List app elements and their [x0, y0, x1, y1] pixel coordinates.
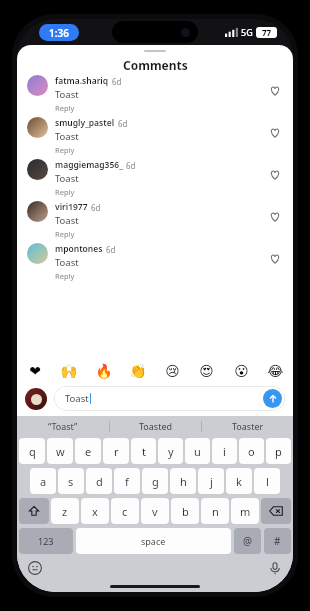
staticText: k	[236, 474, 242, 489]
button[interactable]: 👏	[128, 361, 148, 381]
button[interactable]: fatma.shariq	[17, 71, 293, 113]
staticText: b	[182, 504, 189, 519]
button[interactable]: a	[30, 468, 56, 494]
staticText: 6d	[118, 118, 128, 129]
staticText: e	[85, 444, 92, 459]
button[interactable]: b	[171, 498, 199, 524]
button[interactable]: l	[254, 468, 280, 494]
button[interactable]: e	[75, 438, 101, 464]
button[interactable]: c	[111, 498, 139, 524]
staticText: smugly_pastel	[55, 117, 115, 129]
button[interactable]: d	[86, 468, 112, 494]
staticText: Reply	[55, 187, 75, 197]
button[interactable]: i	[212, 438, 237, 464]
button[interactable]: p	[266, 438, 291, 464]
button[interactable]: smugly_pastel	[17, 113, 293, 155]
button[interactable]: 😂	[265, 361, 285, 381]
button[interactable]: 123	[19, 528, 73, 554]
staticText: 😂	[267, 363, 284, 379]
staticText: fatma.shariq	[55, 75, 109, 87]
button[interactable]: z	[51, 498, 79, 524]
staticText: 6d	[126, 160, 136, 171]
button[interactable]: Dictation	[267, 560, 283, 576]
button[interactable]: 🔥	[94, 361, 114, 381]
button[interactable]: #	[264, 528, 291, 554]
staticText: Toast	[55, 214, 79, 227]
button[interactable]: space	[76, 528, 231, 554]
staticText: p	[275, 444, 282, 459]
button[interactable]: 😍	[196, 361, 216, 381]
staticText: q	[29, 444, 36, 459]
staticText: 6d	[112, 76, 122, 87]
button[interactable]: Toast	[54, 386, 285, 411]
button[interactable]: w	[47, 438, 73, 464]
staticText: m	[240, 504, 251, 519]
button[interactable]: Reply	[55, 187, 75, 197]
button[interactable]: Like	[267, 125, 283, 141]
button[interactable]: 😮	[231, 361, 251, 381]
button[interactable]: Reply	[55, 103, 75, 113]
button[interactable]: j	[198, 468, 224, 494]
button[interactable]: k	[226, 468, 252, 494]
staticText: t	[142, 444, 146, 459]
staticText: Reply	[55, 145, 75, 155]
staticText: Toasted	[139, 420, 173, 432]
button[interactable]: Reply	[55, 271, 75, 281]
staticText: n	[212, 504, 219, 519]
staticText: h	[180, 474, 187, 489]
button[interactable]: Backspace	[261, 498, 291, 524]
staticText: z	[62, 504, 68, 519]
button[interactable]: o	[239, 438, 264, 464]
button[interactable]: f	[114, 468, 140, 494]
staticText: 👏	[129, 363, 147, 379]
button[interactable]: Toaster	[202, 416, 293, 436]
button[interactable]: u	[185, 438, 210, 464]
staticText: 5G	[241, 26, 253, 38]
button[interactable]: 😢	[162, 361, 182, 381]
staticText: 6d	[91, 202, 101, 213]
button[interactable]: 🙌	[59, 361, 79, 381]
button[interactable]: q	[19, 438, 45, 464]
button[interactable]: mpontones	[17, 239, 293, 281]
staticText: a	[40, 474, 47, 489]
button[interactable]: s	[58, 468, 84, 494]
button[interactable]: Like	[267, 167, 283, 183]
button[interactable]: y	[158, 438, 183, 464]
staticText: 🙌	[60, 363, 78, 379]
button[interactable]: “Toast”	[17, 416, 109, 436]
staticText: 😢	[165, 363, 180, 379]
staticText: Toaster	[232, 420, 264, 432]
button[interactable]: viri1977	[17, 197, 293, 239]
button[interactable]: m	[231, 498, 259, 524]
button[interactable]: ❤️	[25, 361, 45, 381]
staticText: 😍	[199, 363, 214, 379]
staticText: @	[243, 534, 252, 548]
button[interactable]: Like	[267, 209, 283, 225]
staticText: d	[96, 474, 103, 489]
button[interactable]: Toasted	[110, 416, 201, 436]
button[interactable]: Reply	[55, 145, 75, 155]
button[interactable]: n	[201, 498, 229, 524]
button[interactable]: maggiemag356_	[17, 155, 293, 197]
staticText: Toast	[55, 256, 79, 269]
button[interactable]: Emoji keyboard	[27, 560, 43, 576]
staticText: s	[68, 474, 74, 489]
button[interactable]: Reply	[55, 229, 75, 239]
button[interactable]: Your profile	[25, 388, 47, 410]
staticText: f	[125, 474, 129, 489]
staticText: Reply	[55, 271, 75, 281]
staticText: o	[248, 444, 255, 459]
button[interactable]: @	[234, 528, 261, 554]
button[interactable]: Like	[267, 251, 283, 267]
button[interactable]: g	[142, 468, 168, 494]
button[interactable]: x	[81, 498, 109, 524]
button[interactable]: Shift	[19, 498, 49, 524]
staticText: #	[274, 534, 281, 548]
button[interactable]: h	[170, 468, 196, 494]
button[interactable]: r	[103, 438, 129, 464]
button[interactable]: Like	[267, 83, 283, 99]
button[interactable]: v	[141, 498, 169, 524]
staticText: mpontones	[55, 243, 103, 255]
button[interactable]: Send	[263, 389, 282, 408]
button[interactable]: t	[131, 438, 156, 464]
